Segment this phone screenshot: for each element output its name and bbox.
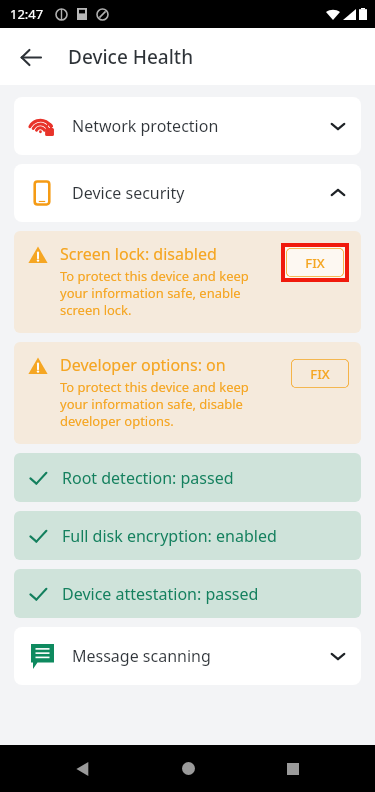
staticText: Message scanning [72,645,329,667]
staticText: Network protection [72,115,329,137]
staticText: Device security [72,182,329,204]
button[interactable]: Device security [14,164,361,222]
button[interactable]: Home [164,745,212,792]
button[interactable]: Full disk encryption: enabled [14,511,361,560]
staticText: FIX [310,365,330,383]
staticText: Root detection: passed [62,467,234,489]
staticText: 12:47 [10,5,44,23]
button[interactable]: Back [8,35,52,79]
staticText: Screen lock: disabled [60,243,217,265]
button[interactable]: Network protection [14,97,361,155]
button[interactable]: FIX [291,359,349,388]
staticText: Developer options: on [60,354,226,376]
button[interactable]: Recents [269,745,317,792]
button[interactable]: Root detection: passed [14,453,361,502]
button[interactable]: Device attestation: passed [14,569,361,618]
button[interactable]: Message scanning [14,627,361,685]
staticText: Device Health [68,44,194,70]
staticText: Full disk encryption: enabled [62,525,277,547]
button[interactable]: FIX [286,248,344,277]
staticText: Device attestation: passed [62,583,259,605]
staticText: FIX [305,254,325,272]
button[interactable]: Back [58,745,106,792]
staticText: To protect this device and keep your inf… [60,378,249,430]
staticText: To protect this device and keep your inf… [60,267,249,319]
